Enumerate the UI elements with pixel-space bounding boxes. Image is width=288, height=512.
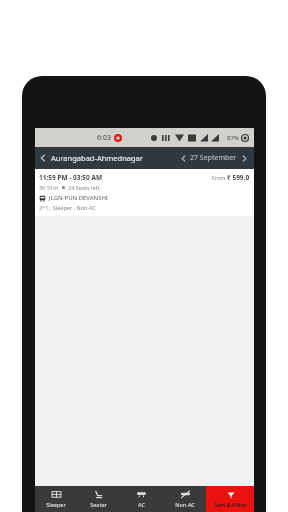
button[interactable]: Previous day	[176, 151, 190, 165]
button[interactable]: Back	[35, 150, 51, 166]
staticText: 11:59 PM - 03:50 AM	[39, 173, 103, 182]
staticText: 2+1, Sleeper , Non-AC	[39, 204, 97, 211]
staticText: 3h 51m	[39, 184, 59, 191]
button[interactable]: Next day	[237, 151, 251, 165]
staticText: ₹ 599.0	[227, 173, 250, 182]
button[interactable]: 11:59 PM - 03:50 AM	[35, 169, 254, 216]
button[interactable]: Sort & Filter	[206, 486, 254, 512]
button[interactable]: Non-AC	[163, 486, 206, 512]
staticText: 24 Seats left	[68, 184, 100, 191]
staticText: JLGN-PUN DEVANSHI	[49, 194, 108, 202]
button[interactable]: Sleeper	[35, 486, 77, 512]
staticText: From	[212, 174, 227, 181]
staticText: AC	[138, 501, 145, 508]
button[interactable]: Seater	[77, 486, 120, 512]
staticText: 87%	[227, 134, 239, 142]
button[interactable]: AC	[120, 486, 163, 512]
staticText: Aurangabad-Ahmednagar	[51, 153, 143, 163]
staticText: Sleeper	[46, 501, 66, 508]
staticText: Seater	[90, 501, 107, 508]
staticText: Non-AC	[175, 501, 195, 508]
staticText: Sort & Filter	[214, 501, 247, 508]
staticText: 6:03	[97, 133, 111, 143]
button[interactable]: 27 September	[190, 153, 237, 163]
